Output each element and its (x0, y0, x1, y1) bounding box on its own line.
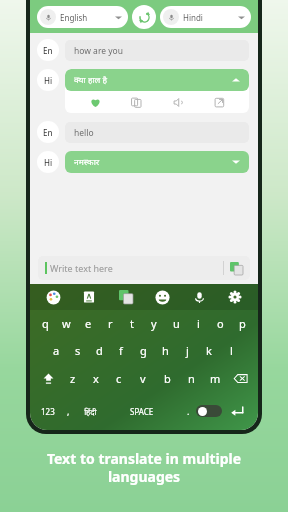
staticText: SPACE (130, 406, 154, 417)
staticText: s (75, 343, 81, 358)
staticText: f (119, 343, 123, 358)
button[interactable]: English (37, 6, 128, 28)
button[interactable]: g (132, 337, 154, 364)
button[interactable]: Shift (35, 365, 61, 391)
staticText: y (151, 316, 157, 331)
button[interactable]: Share (208, 91, 230, 113)
staticText: hello (74, 127, 94, 139)
button[interactable]: f (110, 337, 132, 364)
button[interactable]: d (88, 337, 110, 364)
staticText: h (162, 343, 169, 358)
staticText: a (53, 343, 60, 358)
staticText: how are you (74, 45, 123, 57)
button[interactable]: Write text here (38, 256, 250, 280)
button[interactable]: a (46, 337, 67, 364)
staticText: w (62, 316, 71, 331)
button[interactable]: En (37, 39, 59, 61)
button[interactable]: Enter (222, 399, 252, 423)
button[interactable]: c (107, 364, 131, 392)
button[interactable]: how are you (65, 40, 249, 61)
staticText: Text to translate in multiple languages (0, 449, 288, 486)
staticText: p (239, 316, 246, 331)
staticText: r (108, 316, 113, 331)
button[interactable]: l (220, 337, 242, 364)
button[interactable]: r (99, 310, 121, 337)
button[interactable]: Settings (224, 286, 246, 308)
button[interactable]: Speak (167, 91, 189, 113)
button[interactable]: Dictionary (78, 286, 100, 308)
button[interactable]: Favorite (84, 91, 106, 113)
button[interactable]: क्या हाल है (65, 69, 249, 91)
staticText: u (173, 316, 180, 331)
staticText: o (217, 316, 224, 331)
button[interactable]: o (209, 310, 231, 337)
staticText: m (210, 371, 221, 386)
staticText: e (85, 316, 92, 331)
staticText: d (96, 343, 103, 358)
staticText: English (60, 12, 88, 23)
staticText: Write text here (50, 262, 113, 274)
staticText: En (43, 45, 53, 56)
button[interactable]: t (121, 310, 143, 337)
button[interactable]: h (154, 337, 176, 364)
staticText: l (230, 343, 233, 358)
staticText: x (93, 371, 99, 386)
button[interactable]: Emoji (151, 286, 173, 308)
button[interactable]: s (67, 337, 88, 364)
button[interactable]: w (56, 310, 77, 337)
button[interactable]: हिंदी (76, 401, 104, 421)
staticText: Hindi (183, 12, 203, 23)
button[interactable]: Voice input (188, 286, 210, 308)
button[interactable]: u (165, 310, 187, 337)
button[interactable]: p (231, 310, 253, 337)
staticText: z (70, 371, 76, 386)
button[interactable]: Hindi (160, 6, 251, 28)
button[interactable]: Copy (125, 91, 147, 113)
button[interactable]: Toggle (196, 405, 222, 417)
staticText: Hi (44, 157, 53, 168)
staticText: b (164, 371, 171, 386)
button[interactable]: hello (65, 122, 249, 143)
button[interactable]: . (180, 401, 196, 421)
button[interactable]: En (37, 121, 59, 143)
staticText: v (140, 371, 146, 386)
button[interactable]: Backspace (227, 365, 253, 391)
button[interactable]: 123 (36, 401, 60, 421)
staticText: , (67, 405, 70, 417)
button[interactable]: , (60, 401, 76, 421)
staticText: n (188, 371, 195, 386)
staticText: q (42, 316, 49, 331)
button[interactable]: q (35, 310, 56, 337)
staticText: 123 (41, 406, 55, 417)
other: Translate (230, 262, 243, 275)
button[interactable]: j (176, 337, 198, 364)
button[interactable]: नमस्कार (65, 151, 249, 173)
button[interactable]: x (84, 364, 107, 392)
staticText: क्या हाल है (74, 74, 108, 86)
staticText: k (206, 343, 212, 358)
button[interactable]: i (187, 310, 209, 337)
button[interactable]: m (203, 364, 227, 392)
button[interactable]: Hi (37, 151, 59, 173)
button[interactable]: b (155, 364, 179, 392)
staticText: c (116, 371, 122, 386)
button[interactable]: e (77, 310, 99, 337)
button[interactable]: v (131, 364, 155, 392)
button[interactable]: k (198, 337, 220, 364)
staticText: j (186, 343, 189, 358)
staticText: En (43, 127, 53, 138)
button[interactable]: Hi (37, 69, 59, 91)
button[interactable]: y (143, 310, 165, 337)
button[interactable]: n (179, 364, 203, 392)
button[interactable]: SPACE (104, 401, 180, 421)
button[interactable]: Theme (42, 286, 64, 308)
staticText: i (197, 316, 200, 331)
staticText: . (187, 405, 190, 417)
staticText: नमस्कार (74, 156, 100, 168)
button[interactable]: Translate (115, 286, 137, 308)
staticText: t (130, 316, 134, 331)
button[interactable]: z (61, 364, 84, 392)
staticText: हिंदी (84, 406, 97, 417)
button[interactable]: Swap languages (132, 5, 156, 29)
staticText: Hi (44, 75, 53, 86)
